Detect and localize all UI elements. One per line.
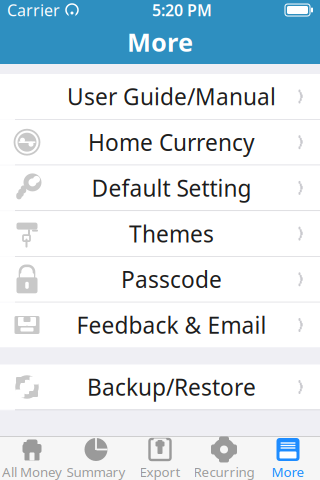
button[interactable]: Export xyxy=(128,436,192,480)
button[interactable]: Recurring xyxy=(192,436,256,480)
staticText: More xyxy=(127,25,193,59)
staticText: More xyxy=(271,463,304,480)
staticText: Themes xyxy=(129,218,214,249)
staticText: Backup/Restore xyxy=(87,372,256,402)
staticText: Passcode xyxy=(121,264,222,294)
button[interactable]: User Guide/Manual xyxy=(0,74,320,119)
staticText: Recurring xyxy=(193,463,254,480)
button[interactable]: Passcode xyxy=(0,257,320,302)
staticText: Summary xyxy=(66,463,125,480)
button[interactable]: Summary xyxy=(64,436,128,480)
button[interactable]: Default Setting xyxy=(0,165,320,210)
button[interactable]: All Money xyxy=(0,436,64,480)
staticText: Feedback & Email xyxy=(76,310,266,340)
staticText: 5:20 PM xyxy=(152,0,212,21)
staticText: Carrier xyxy=(7,0,60,21)
button[interactable]: Backup/Restore xyxy=(0,364,320,409)
button[interactable]: More xyxy=(256,436,320,480)
staticText: All Money xyxy=(2,463,62,480)
button[interactable]: Themes xyxy=(0,211,320,256)
button[interactable]: Feedback & Email xyxy=(0,302,320,347)
staticText: Export xyxy=(139,463,180,480)
staticText: User Guide/Manual xyxy=(67,81,276,111)
button[interactable]: Home Currency xyxy=(0,120,320,165)
staticText: Home Currency xyxy=(88,127,255,157)
staticText: Default Setting xyxy=(91,173,251,203)
